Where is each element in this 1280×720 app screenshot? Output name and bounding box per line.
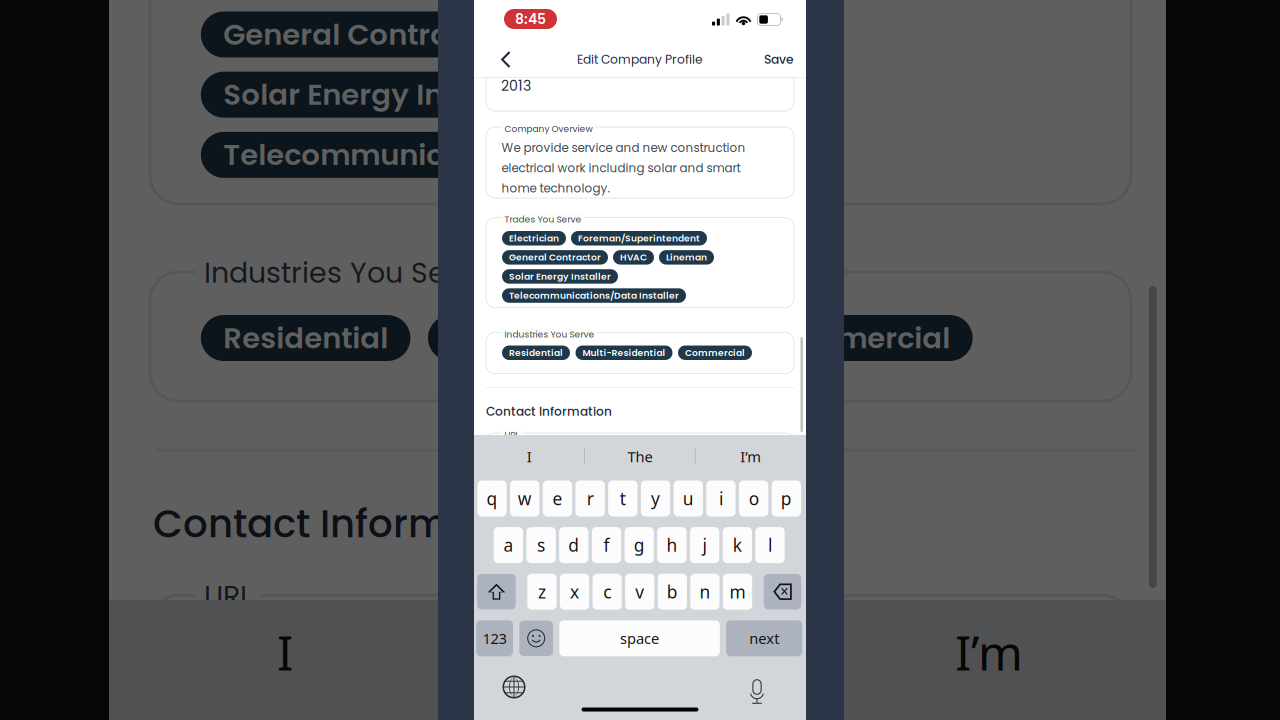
- staticText: Commercial: [766, 318, 950, 358]
- button[interactable]: n: [690, 574, 720, 610]
- staticText: k: [733, 534, 742, 557]
- staticText: f: [603, 534, 609, 557]
- button[interactable]: Electrician: [502, 231, 566, 245]
- button[interactable]: Emoji: [519, 620, 553, 656]
- staticText: Edit Company Profile: [577, 51, 703, 68]
- button[interactable]: Shift: [477, 574, 516, 609]
- button[interactable]: Delete: [764, 574, 801, 609]
- staticText: General Contractor: [509, 251, 601, 264]
- staticText: q: [486, 487, 497, 510]
- button[interactable]: v: [625, 574, 654, 610]
- staticText: Foreman/Superintendent: [578, 232, 700, 245]
- staticText: 123: [483, 629, 507, 648]
- button[interactable]: c: [593, 574, 622, 610]
- staticText: home technology.: [501, 180, 609, 196]
- button[interactable]: Telecommunications/Data Installer: [502, 288, 686, 303]
- staticText: The: [628, 447, 653, 466]
- staticText: I: [527, 447, 532, 466]
- button[interactable]: HVAC: [613, 250, 654, 265]
- staticText: u: [683, 487, 694, 510]
- staticText: Solar Energy Installer: [223, 74, 536, 115]
- staticText: Telecommunications/Data Installer: [509, 289, 679, 302]
- button[interactable]: b: [658, 574, 687, 610]
- staticText: d: [568, 534, 579, 557]
- button[interactable]: u: [674, 480, 703, 516]
- button[interactable]: General Contractor: [502, 250, 608, 265]
- staticText: space: [620, 629, 659, 648]
- staticText: e: [552, 487, 562, 510]
- staticText: Lineman: [666, 251, 707, 264]
- button[interactable]: o: [739, 480, 768, 516]
- button[interactable]: s: [526, 527, 556, 563]
- staticText: I: [277, 620, 293, 684]
- button[interactable]: The: [585, 435, 695, 478]
- staticText: s: [537, 534, 545, 557]
- staticText: o: [749, 487, 759, 510]
- staticText: URL: [204, 576, 252, 616]
- staticText: c: [603, 580, 611, 603]
- button[interactable]: Dictate: [740, 670, 774, 704]
- staticText: l: [768, 534, 772, 557]
- button[interactable]: 123: [476, 620, 513, 656]
- button[interactable]: j: [690, 527, 719, 563]
- button[interactable]: Switch keyboard: [497, 670, 531, 704]
- button[interactable]: w: [510, 480, 539, 516]
- button[interactable]: Residential: [502, 345, 570, 360]
- staticText: Commercial: [685, 346, 745, 359]
- button[interactable]: e: [543, 480, 572, 516]
- staticText: z: [538, 580, 546, 603]
- staticText: HVAC: [620, 251, 647, 264]
- staticText: The: [595, 620, 679, 684]
- button[interactable]: t: [608, 480, 637, 516]
- button[interactable]: Lineman: [659, 250, 714, 265]
- staticText: v: [635, 580, 644, 603]
- button[interactable]: k: [723, 527, 752, 563]
- button[interactable]: I: [474, 435, 585, 478]
- staticText: electrical work including solar and smar…: [501, 160, 740, 176]
- staticText: General Contractor: [223, 14, 509, 55]
- staticText: g: [634, 534, 645, 557]
- staticText: j: [703, 534, 707, 557]
- button[interactable]: m: [723, 574, 752, 610]
- staticText: I’m: [740, 447, 761, 466]
- button[interactable]: l: [755, 527, 785, 563]
- staticText: Residential: [223, 318, 388, 358]
- staticText: w: [518, 487, 532, 510]
- button[interactable]: Solar Energy Installer: [502, 269, 618, 284]
- staticText: 2013: [501, 76, 531, 96]
- button[interactable]: Foreman/Superintendent: [571, 231, 707, 245]
- button[interactable]: x: [560, 574, 589, 610]
- button[interactable]: space: [559, 620, 720, 656]
- staticText: We provide service and new construction: [501, 139, 745, 156]
- staticText: m: [730, 580, 746, 603]
- button[interactable]: r: [575, 480, 605, 516]
- button[interactable]: next: [726, 620, 802, 656]
- staticText: h: [666, 534, 677, 557]
- staticText: i: [719, 487, 723, 510]
- button[interactable]: z: [527, 574, 557, 610]
- button[interactable]: d: [559, 527, 588, 563]
- staticText: x: [570, 580, 579, 603]
- staticText: r: [587, 487, 594, 510]
- button[interactable]: I’m: [695, 435, 806, 478]
- button[interactable]: g: [624, 527, 654, 563]
- button[interactable]: p: [772, 480, 801, 516]
- button[interactable]: Commercial: [678, 345, 752, 360]
- staticText: Contact Information: [486, 403, 612, 420]
- staticText: Trades You Serve: [504, 213, 581, 225]
- staticText: next: [749, 629, 779, 648]
- button[interactable]: i: [706, 480, 736, 516]
- staticText: Industries You Serve: [504, 328, 594, 340]
- staticText: p: [781, 487, 792, 510]
- button[interactable]: a: [494, 527, 523, 563]
- button[interactable]: y: [641, 480, 670, 516]
- button[interactable]: q: [477, 480, 507, 516]
- staticText: Solar Energy Installer: [509, 270, 611, 283]
- button[interactable]: Multi-Residential: [575, 345, 672, 360]
- button[interactable]: h: [657, 527, 686, 563]
- button[interactable]: f: [592, 527, 621, 563]
- staticText: b: [667, 580, 678, 603]
- button[interactable]: Save: [751, 42, 807, 77]
- button[interactable]: Back: [489, 42, 521, 77]
- staticText: Electrician: [509, 232, 559, 245]
